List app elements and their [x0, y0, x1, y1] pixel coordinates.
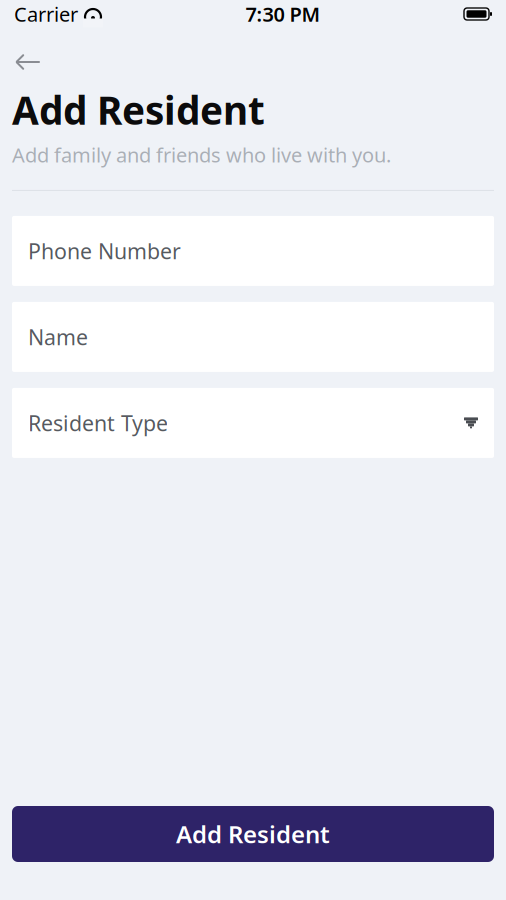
staticText: Add Resident	[12, 84, 265, 135]
button[interactable]: Name	[12, 302, 494, 372]
staticText: Add Resident	[176, 818, 330, 850]
button[interactable]: Phone Number	[12, 216, 494, 286]
button[interactable]: Add Resident	[12, 806, 494, 862]
staticText: Name	[28, 323, 88, 351]
staticText: Carrier	[14, 1, 78, 27]
staticText: Phone Number	[28, 237, 181, 265]
staticText: Add family and friends who live with you…	[12, 141, 391, 168]
button[interactable]: Back	[6, 42, 50, 82]
staticText: Resident Type	[28, 409, 168, 437]
button[interactable]: Resident Type	[12, 388, 494, 458]
staticText: 7:30 PM	[245, 1, 320, 27]
